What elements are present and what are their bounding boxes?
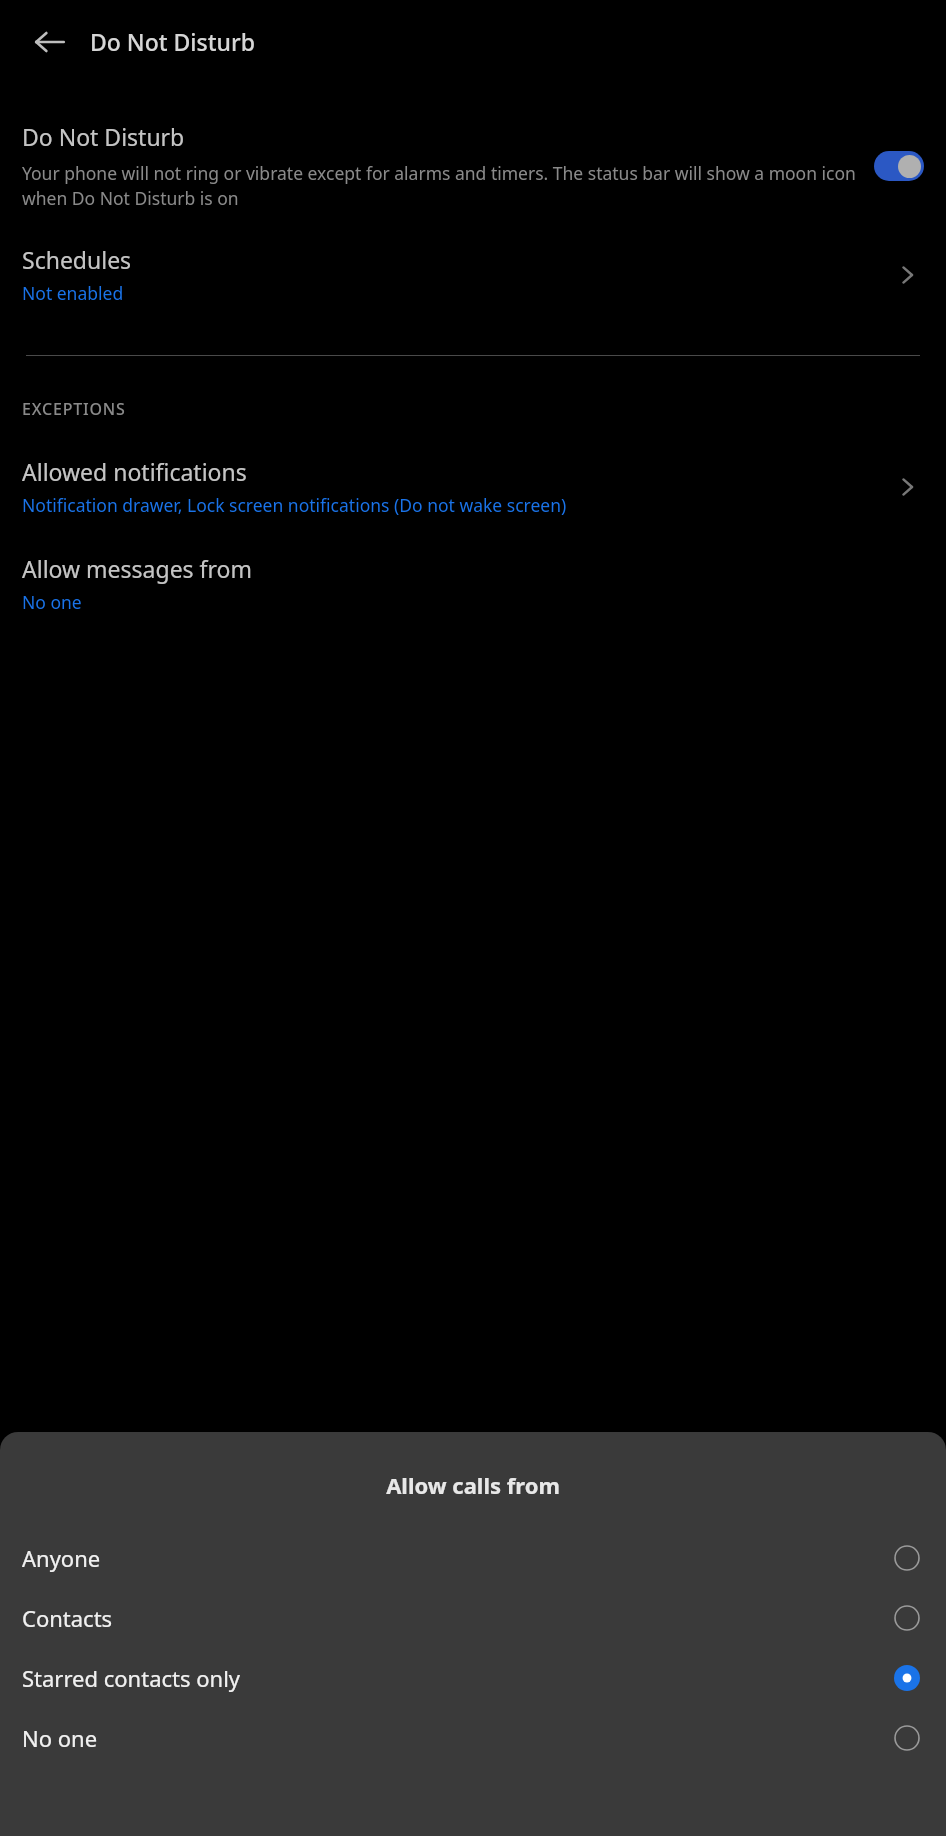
button[interactable]: Back <box>24 16 76 68</box>
staticText: Not enabled <box>22 281 124 305</box>
staticText: Allow messages from <box>22 553 252 584</box>
staticText: Your phone will not ring or vibrate exce… <box>22 161 858 210</box>
button[interactable]: Schedules <box>0 244 946 305</box>
button[interactable]: Allowed notifications <box>0 456 946 517</box>
staticText: Allowed notifications <box>22 456 247 487</box>
staticText: Starred contacts only <box>22 1663 894 1693</box>
staticText: Allow calls from <box>0 1470 946 1500</box>
button[interactable]: Allow messages from <box>0 553 946 614</box>
staticText: No one <box>22 590 82 614</box>
staticText: Do Not Disturb <box>22 121 185 152</box>
staticText: EXCEPTIONS <box>22 398 126 420</box>
button[interactable]: Starred contacts only <box>0 1648 946 1708</box>
staticText: Do Not Disturb <box>90 26 255 57</box>
button[interactable]: Do Not Disturb toggle <box>874 151 924 181</box>
button[interactable]: Contacts <box>0 1588 946 1648</box>
button[interactable]: Anyone <box>0 1528 946 1588</box>
staticText: Schedules <box>22 244 132 275</box>
staticText: No one <box>22 1723 894 1753</box>
staticText: Notification drawer, Lock screen notific… <box>22 493 567 517</box>
button[interactable]: Do Not Disturb <box>0 121 946 210</box>
staticText: Anyone <box>22 1543 894 1573</box>
button[interactable]: No one <box>0 1708 946 1768</box>
staticText: Contacts <box>22 1603 894 1633</box>
